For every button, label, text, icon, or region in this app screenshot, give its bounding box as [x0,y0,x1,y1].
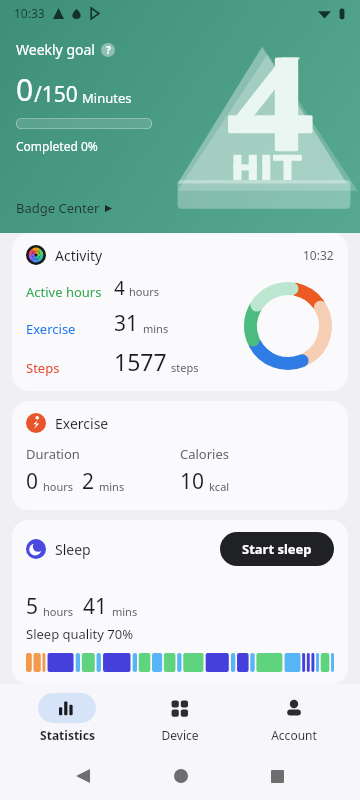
button[interactable]: Help [101,43,115,57]
staticText: Calories [180,445,230,463]
staticText: Start sleep [242,540,312,558]
staticText: Account [271,727,317,743]
staticText: Steps [26,359,60,377]
button[interactable]: Account [247,689,341,747]
staticText: kcal [209,479,230,494]
staticText: Exercise [26,320,76,338]
staticText: 31 [114,309,139,338]
staticText: Weekly goal [16,40,95,59]
staticText: 10 [180,467,205,496]
staticText: Sleep [55,540,91,559]
staticText: 0 [16,69,34,110]
staticText: Activity [55,246,103,265]
staticText: /150 [34,80,78,109]
staticText: mins [99,479,125,494]
button[interactable]: Badge Center [16,199,112,217]
button[interactable]: Activity [12,233,348,391]
staticText: Statistics [40,727,95,743]
staticText: Completed 0% [16,138,98,154]
staticText: hours [43,604,74,619]
button[interactable]: Home [166,761,196,791]
staticText: mins [112,604,138,619]
staticText: hours [43,479,74,494]
staticText: ? [106,43,111,57]
button[interactable]: Recents [263,762,292,791]
staticText: 2 [82,467,95,496]
staticText: 0 [26,467,39,496]
button[interactable]: Statistics [20,689,114,747]
staticText: 4 [114,275,125,301]
staticText: 1577 [114,346,167,377]
button[interactable]: Back [68,761,98,791]
staticText: Sleep quality 70% [26,625,133,643]
staticText: Duration [26,445,80,463]
staticText: 41 [83,592,108,621]
staticText: Badge Center [16,199,100,217]
staticText: 10:32 [303,247,334,263]
staticText: Active hours [26,283,102,301]
staticText: 5 [26,592,39,621]
staticText: Minutes [82,89,132,107]
staticText: steps [171,360,199,375]
button[interactable]: Start sleep [220,532,334,566]
staticText: 10:33 [14,5,45,21]
staticText: Device [161,727,199,743]
staticText: hours [129,284,160,299]
button[interactable]: Device [133,689,227,747]
button[interactable]: Exercise [12,401,348,510]
staticText: Exercise [55,414,109,433]
button[interactable]: Sleep [12,520,348,684]
staticText: mins [143,321,169,336]
